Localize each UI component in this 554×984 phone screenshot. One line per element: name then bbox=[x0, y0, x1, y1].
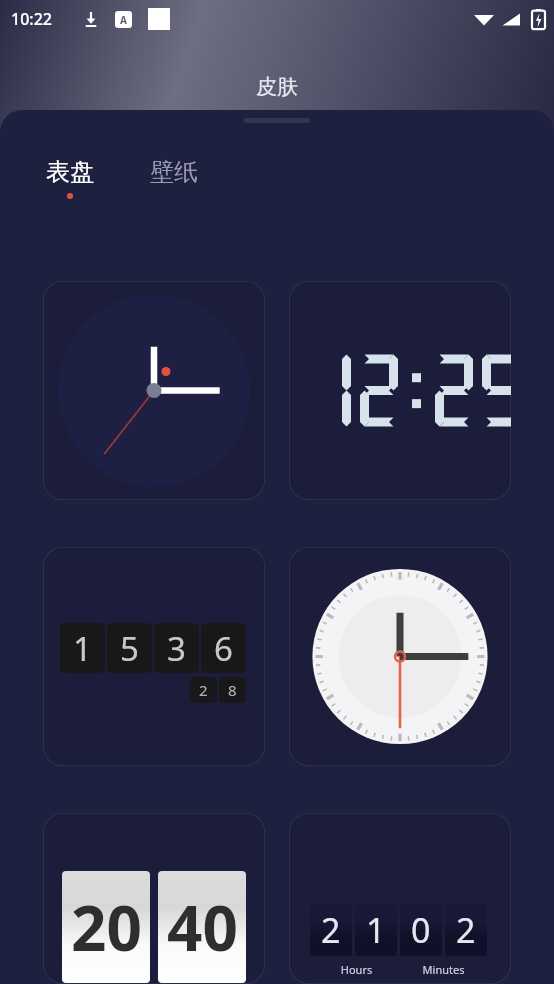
staticText: 40 bbox=[167, 885, 238, 969]
staticText: 3 bbox=[167, 626, 186, 671]
staticText: 壁纸 bbox=[150, 157, 198, 187]
staticText: 20 bbox=[71, 885, 142, 969]
staticText: 皮肤 bbox=[0, 74, 554, 100]
button[interactable]: Watch face preview bbox=[43, 813, 265, 984]
button[interactable]: Watch face preview bbox=[43, 547, 265, 766]
button[interactable]: Watch face preview bbox=[289, 547, 511, 766]
button[interactable]: 壁纸 bbox=[148, 155, 200, 201]
staticText: 2 bbox=[456, 907, 476, 953]
staticText: A bbox=[120, 13, 127, 27]
button[interactable]: 表盘 bbox=[44, 155, 96, 201]
staticText: 6 bbox=[214, 626, 233, 671]
button[interactable]: Watch face preview bbox=[289, 281, 511, 500]
button[interactable]: Watch face preview bbox=[289, 813, 511, 984]
staticText: 2 bbox=[199, 680, 208, 700]
staticText: 5 bbox=[120, 626, 139, 671]
staticText: Hours bbox=[313, 962, 400, 977]
staticText: 表盘 bbox=[46, 157, 94, 187]
staticText: 1 bbox=[73, 626, 92, 671]
staticText: 8 bbox=[228, 680, 237, 700]
staticText: 2 bbox=[321, 907, 341, 953]
staticText: 1 bbox=[366, 907, 386, 953]
button[interactable]: Watch face preview bbox=[43, 281, 265, 500]
staticText: Minutes bbox=[400, 962, 487, 977]
staticText: 0 bbox=[411, 907, 431, 953]
staticText: 10:22 bbox=[11, 8, 52, 30]
